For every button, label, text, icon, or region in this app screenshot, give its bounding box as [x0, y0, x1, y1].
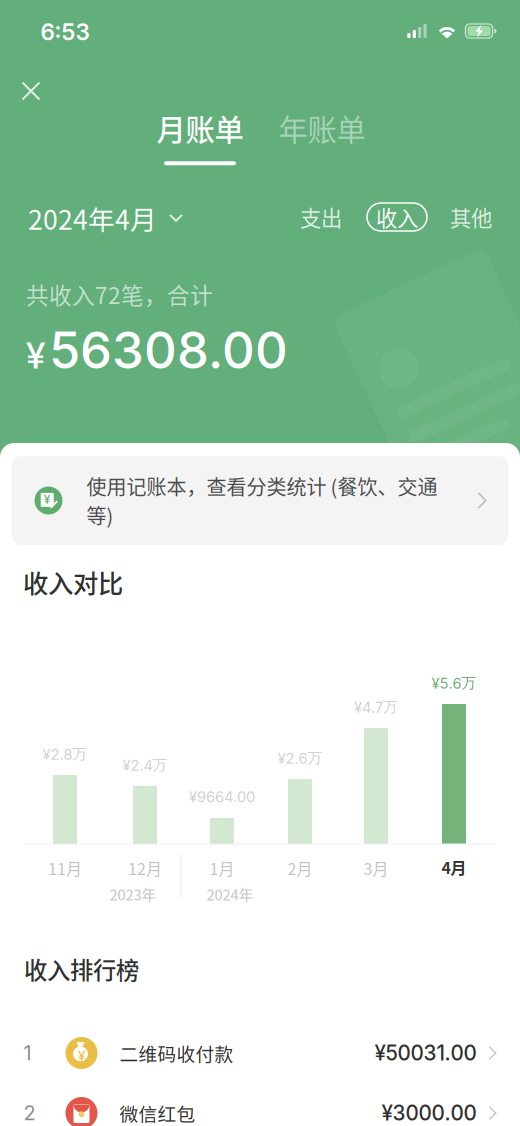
- staticText: 共收入72笔，合计: [26, 278, 213, 310]
- staticText: ¥4.7万: [354, 698, 398, 716]
- staticText: ¥: [44, 492, 51, 507]
- button[interactable]: Close: [8, 68, 54, 114]
- staticText: ¥: [78, 1048, 85, 1064]
- staticText: ¥3000.00: [381, 1100, 476, 1125]
- staticText: 微信红包: [119, 1099, 195, 1126]
- staticText: 56308.00: [49, 319, 288, 381]
- staticText: 12月: [128, 856, 162, 880]
- staticText: 11月: [48, 856, 82, 880]
- button[interactable]: 收入: [367, 203, 427, 231]
- staticText: 使用记账本，查看分类统计 (餐饮、交通等): [86, 471, 437, 529]
- staticText: ¥: [26, 334, 45, 377]
- staticText: 其他: [450, 202, 492, 232]
- staticText: 2: [23, 1101, 35, 1125]
- staticText: 3月: [363, 856, 388, 880]
- staticText: ¥2.6万: [277, 749, 322, 767]
- staticText: 收入对比: [23, 564, 123, 600]
- staticText: 4月: [441, 855, 466, 879]
- staticText: 2月: [287, 856, 312, 880]
- button[interactable]: 2024年4月: [28, 197, 238, 239]
- button[interactable]: 1: [23, 1024, 496, 1082]
- button[interactable]: 月账单: [152, 108, 248, 164]
- staticText: ¥2.4万: [122, 756, 167, 774]
- staticText: 1月: [209, 856, 234, 880]
- staticText: 6:53: [40, 18, 89, 46]
- button[interactable]: 年账单: [274, 108, 370, 164]
- staticText: 2023年: [109, 883, 156, 905]
- button[interactable]: 支出: [294, 200, 348, 234]
- staticText: 年账单: [278, 107, 365, 149]
- staticText: 二维码收付款: [119, 1039, 233, 1066]
- staticText: 1: [23, 1041, 31, 1065]
- staticText: 收入排行榜: [24, 952, 139, 986]
- staticText: ¥2.8万: [42, 745, 87, 763]
- staticText: ¥50031.00: [374, 1040, 476, 1065]
- staticText: 2024年4月: [28, 199, 157, 237]
- button[interactable]: ¥: [11, 456, 508, 545]
- staticText: 月账单: [156, 107, 243, 149]
- staticText: ¥5.6万: [431, 674, 476, 692]
- staticText: 收入: [376, 202, 418, 232]
- staticText: 2024年: [206, 883, 253, 905]
- staticText: ¥9664.00: [189, 788, 255, 806]
- button[interactable]: 其他: [444, 200, 498, 234]
- button[interactable]: 2: [23, 1084, 496, 1126]
- staticText: 支出: [300, 202, 342, 232]
